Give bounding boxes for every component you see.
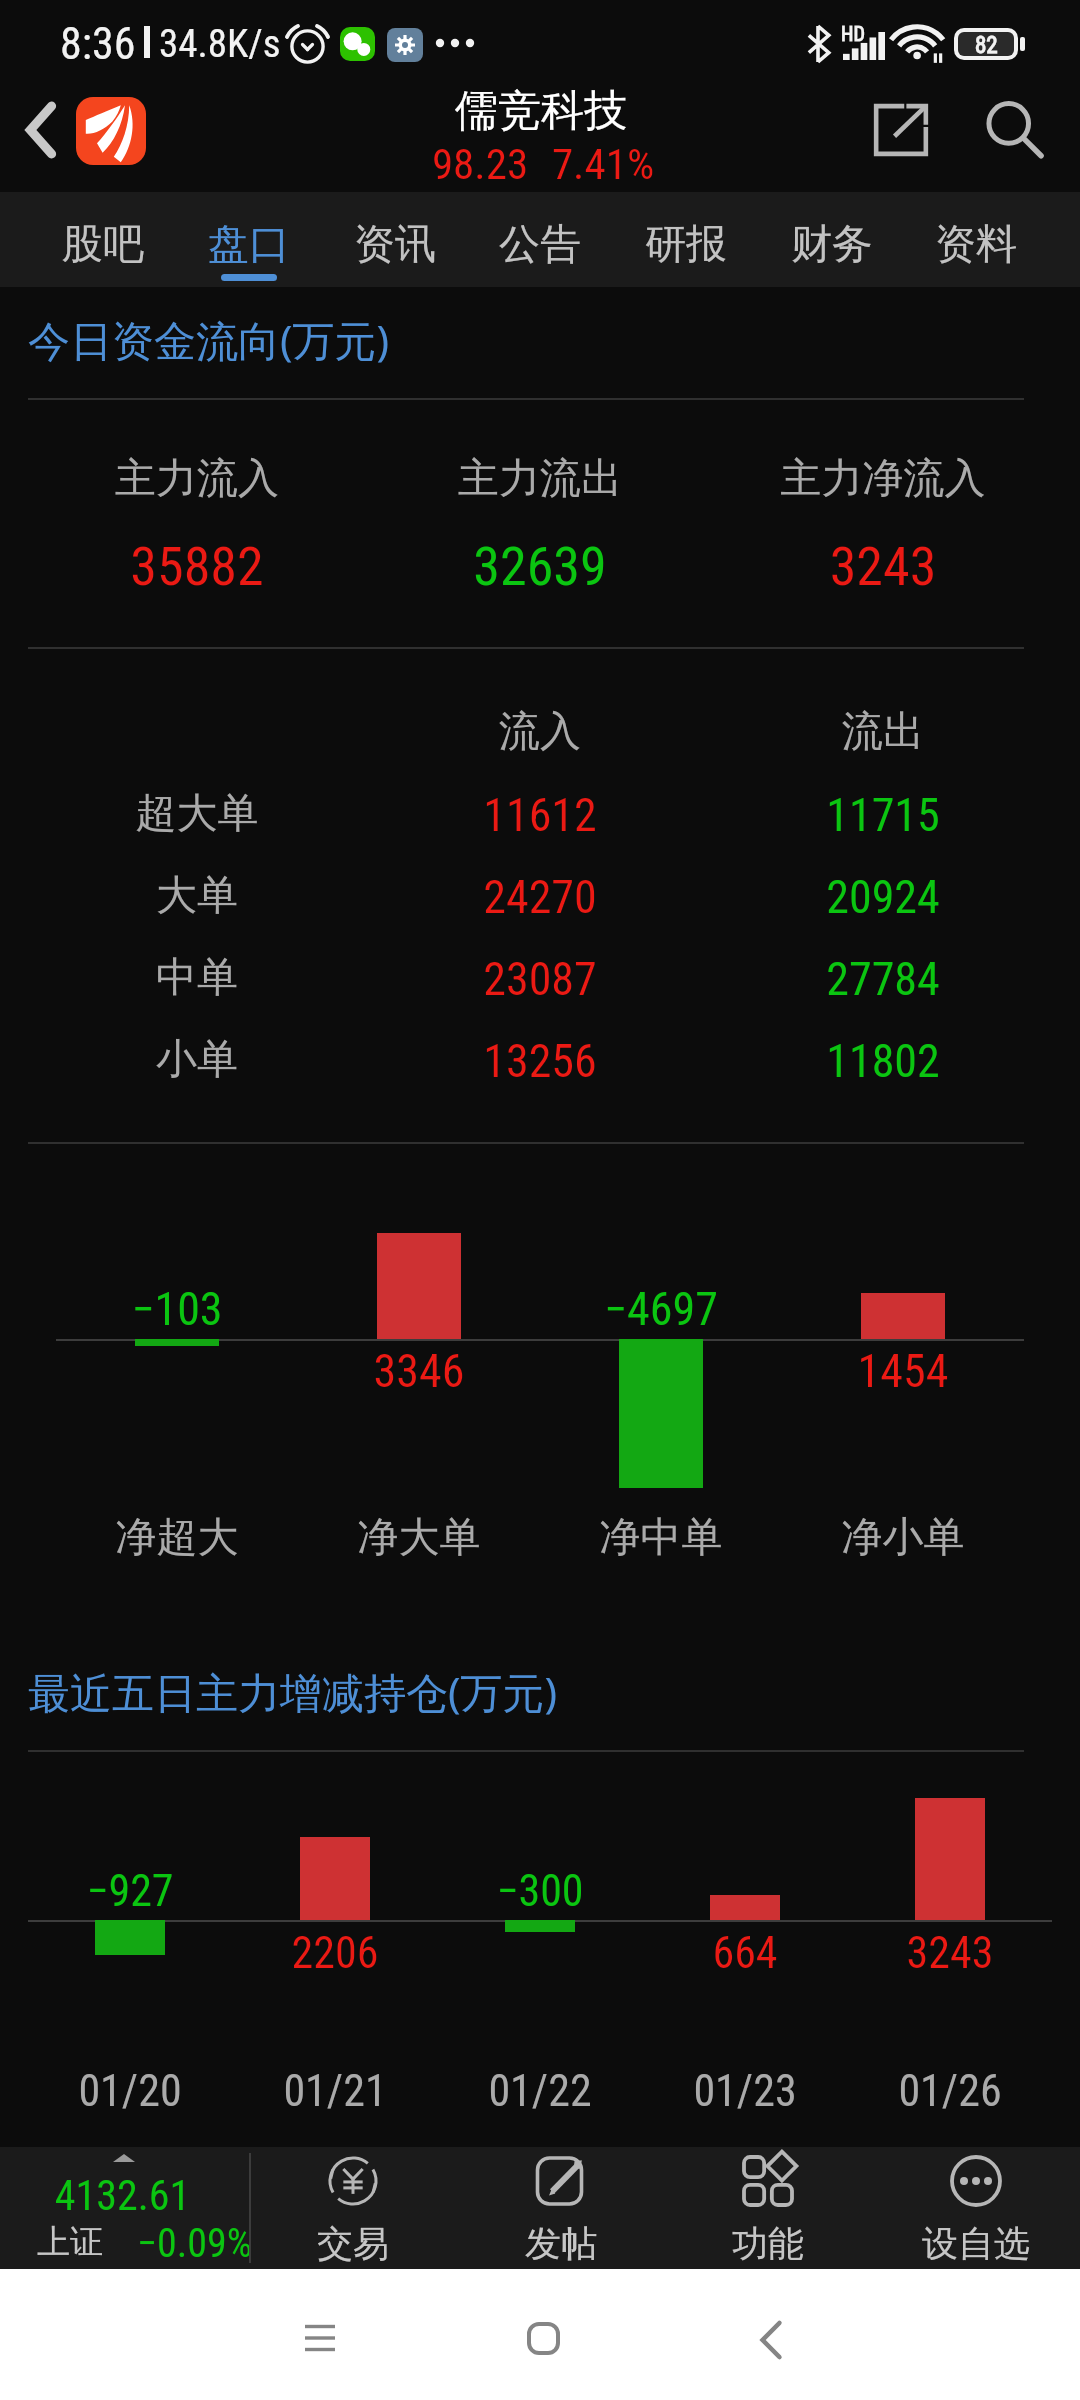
staticText: 35882: [27, 535, 367, 598]
staticText: 盘口: [179, 219, 319, 271]
staticText: 主力净流入: [713, 453, 1053, 505]
staticText: −927: [20, 1865, 240, 1917]
staticText: 资讯: [325, 219, 465, 271]
button[interactable]: 交易: [249, 2147, 457, 2269]
staticText: 11715: [713, 788, 1053, 842]
staticText: 设自选: [872, 2221, 1080, 2266]
button[interactable]: Search: [970, 86, 1062, 178]
button[interactable]: 盘口: [179, 192, 319, 287]
staticText: 上证: [37, 2221, 103, 2263]
button[interactable]: 公告: [470, 192, 610, 287]
staticText: 主力流出: [370, 453, 710, 505]
button[interactable]: 研报: [616, 192, 756, 287]
button[interactable]: 财务: [762, 192, 902, 287]
staticText: 主力流入: [27, 453, 367, 505]
button[interactable]: 发帖: [457, 2147, 665, 2269]
staticText: 13256: [370, 1034, 710, 1088]
staticText: 7.41%: [483, 139, 723, 189]
staticText: 净小单: [773, 1512, 1033, 1564]
staticText: 净大单: [289, 1512, 549, 1564]
staticText: 2206: [225, 1927, 445, 1979]
staticText: 4132.61: [0, 2171, 247, 2220]
staticText: 01/21: [225, 2065, 445, 2117]
button[interactable]: App home: [76, 97, 146, 165]
staticText: 24270: [370, 870, 710, 924]
staticText: 01/23: [635, 2065, 855, 2117]
staticText: 公告: [470, 219, 610, 271]
staticText: 中单: [27, 952, 367, 1004]
staticText: 流入: [370, 706, 710, 758]
button[interactable]: Recents: [280, 2301, 360, 2375]
staticText: 最近五日主力增减持仓(万元): [28, 1663, 558, 1720]
staticText: 股吧: [33, 219, 173, 271]
button[interactable]: 股吧: [33, 192, 173, 287]
staticText: 32639: [370, 535, 710, 598]
button[interactable]: 资讯: [325, 192, 465, 287]
staticText: HD: [841, 22, 865, 45]
staticText: 财务: [762, 219, 902, 271]
staticText: 超大单: [27, 788, 367, 840]
staticText: 儒竞科技: [241, 84, 841, 138]
button[interactable]: 功能: [664, 2147, 872, 2269]
button[interactable]: Back: [0, 86, 82, 174]
staticText: 今日资金流向(万元): [28, 311, 390, 368]
staticText: −300: [430, 1865, 650, 1917]
staticText: 01/26: [840, 2065, 1060, 2117]
staticText: 98.23: [360, 139, 600, 189]
button[interactable]: 主力净流入: [713, 398, 1053, 647]
staticText: 大单: [27, 870, 367, 922]
staticText: 11802: [713, 1034, 1053, 1088]
staticText: 8:36: [60, 18, 136, 70]
staticText: 01/20: [20, 2065, 240, 2117]
staticText: 1454: [773, 1344, 1033, 1398]
staticText: 20924: [713, 870, 1053, 924]
staticText: −103: [47, 1282, 307, 1336]
staticText: 发帖: [457, 2221, 665, 2266]
button[interactable]: Back: [731, 2303, 811, 2377]
button[interactable]: 主力流出: [370, 398, 710, 647]
staticText: 27784: [713, 952, 1053, 1006]
staticText: 01/22: [430, 2065, 650, 2117]
staticText: 功能: [664, 2221, 872, 2266]
button[interactable]: 4132.61: [0, 2147, 249, 2269]
staticText: 研报: [616, 219, 756, 271]
staticText: 交易: [249, 2221, 457, 2266]
staticText: 小单: [27, 1034, 367, 1086]
staticText: 82: [975, 32, 998, 56]
staticText: 34.8K/s: [159, 21, 281, 67]
staticText: 流出: [713, 706, 1053, 758]
staticText: 664: [635, 1927, 855, 1979]
staticText: 23087: [370, 952, 710, 1006]
button[interactable]: Home: [503, 2301, 583, 2375]
button[interactable]: Share: [857, 86, 945, 174]
staticText: −4697: [531, 1282, 791, 1336]
staticText: 净中单: [531, 1512, 791, 1564]
button[interactable]: 主力流入: [27, 398, 367, 647]
button[interactable]: 资料: [906, 192, 1046, 287]
staticText: 3243: [840, 1927, 1060, 1979]
staticText: 净超大: [47, 1512, 307, 1564]
staticText: 11612: [370, 788, 710, 842]
staticText: −0.09%: [137, 2220, 253, 2267]
staticText: 资料: [906, 219, 1046, 271]
staticText: 3243: [713, 535, 1053, 598]
staticText: 3346: [289, 1344, 549, 1398]
button[interactable]: 设自选: [872, 2147, 1080, 2269]
